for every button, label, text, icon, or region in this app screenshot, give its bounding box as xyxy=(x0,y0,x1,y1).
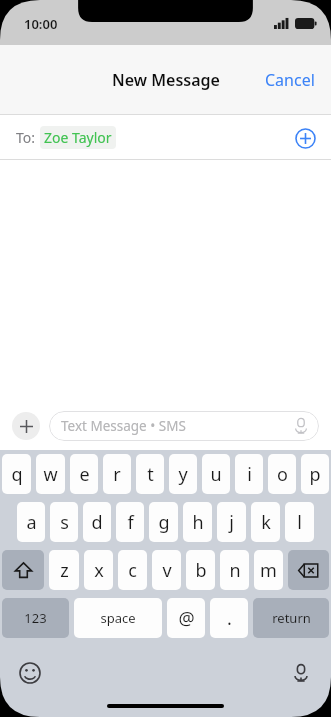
staticText: g xyxy=(158,510,170,535)
staticText: Text Message • SMS xyxy=(61,417,186,435)
other: Dictate xyxy=(292,417,310,435)
staticText: t xyxy=(147,462,154,487)
button[interactable]: n xyxy=(220,550,249,590)
staticText: l xyxy=(297,510,302,535)
staticText: . xyxy=(227,606,232,631)
button[interactable]: q xyxy=(2,454,31,494)
button[interactable]: 123 xyxy=(2,598,69,638)
button[interactable]: t xyxy=(136,454,164,494)
staticText: r xyxy=(113,462,121,487)
staticText: m xyxy=(260,558,277,583)
button[interactable]: r xyxy=(103,454,131,494)
staticText: h xyxy=(192,510,204,535)
button[interactable]: @ xyxy=(167,598,205,638)
button[interactable]: Shift xyxy=(2,550,44,590)
button[interactable]: Backspace xyxy=(288,550,329,590)
staticText: x xyxy=(94,558,104,583)
staticText: Cancel xyxy=(265,69,315,91)
button[interactable]: z xyxy=(49,550,79,590)
staticText: j xyxy=(229,510,234,535)
button[interactable]: m xyxy=(254,550,283,590)
staticText: To: xyxy=(16,128,36,147)
staticText: d xyxy=(91,510,103,535)
staticText: 123 xyxy=(24,609,47,627)
staticText: b xyxy=(195,558,207,583)
button[interactable]: return xyxy=(253,598,329,638)
button[interactable]: u xyxy=(202,454,230,494)
button[interactable]: . xyxy=(210,598,248,638)
staticText: space xyxy=(100,609,136,627)
staticText: u xyxy=(210,462,222,487)
button[interactable]: Emoji xyxy=(14,657,46,689)
staticText: return xyxy=(272,609,311,627)
button[interactable]: p xyxy=(301,454,329,494)
staticText: a xyxy=(26,510,37,535)
staticText: w xyxy=(43,462,58,487)
button[interactable]: h xyxy=(183,502,212,542)
button[interactable]: e xyxy=(70,454,98,494)
button[interactable]: Attach xyxy=(12,412,40,440)
button[interactable]: s xyxy=(50,502,78,542)
button[interactable]: Dictation xyxy=(285,657,317,689)
staticText: z xyxy=(60,558,69,583)
staticText: f xyxy=(127,510,134,535)
button[interactable]: l xyxy=(285,502,314,542)
staticText: o xyxy=(277,462,288,487)
button[interactable]: k xyxy=(251,502,280,542)
button[interactable]: Add contact xyxy=(289,122,321,154)
button[interactable]: space xyxy=(74,598,162,638)
staticText: p xyxy=(309,462,321,487)
staticText: Zoe Taylor xyxy=(44,128,112,147)
staticText: @ xyxy=(178,606,195,631)
staticText: i xyxy=(247,462,252,487)
button[interactable]: c xyxy=(118,550,147,590)
staticText: 10:00 xyxy=(24,15,58,33)
button[interactable]: Cancel xyxy=(249,59,331,101)
staticText: New Message xyxy=(112,69,220,91)
staticText: e xyxy=(79,462,90,487)
button[interactable]: y xyxy=(169,454,197,494)
staticText: q xyxy=(11,462,23,487)
button[interactable]: d xyxy=(83,502,111,542)
button[interactable]: Text Message • SMS xyxy=(49,411,319,441)
button[interactable]: f xyxy=(116,502,144,542)
button[interactable]: o xyxy=(268,454,296,494)
button[interactable]: b xyxy=(186,550,215,590)
staticText: y xyxy=(178,462,188,487)
button[interactable]: a xyxy=(17,502,45,542)
button[interactable]: j xyxy=(217,502,246,542)
staticText: k xyxy=(261,510,271,535)
staticText: v xyxy=(162,558,172,583)
button[interactable]: Zoe Taylor xyxy=(40,126,116,149)
button[interactable]: g xyxy=(149,502,178,542)
staticText: n xyxy=(229,558,241,583)
button[interactable]: x xyxy=(84,550,113,590)
button[interactable]: w xyxy=(36,454,65,494)
staticText: s xyxy=(60,510,69,535)
button[interactable]: v xyxy=(152,550,181,590)
staticText: c xyxy=(128,558,137,583)
button[interactable]: i xyxy=(235,454,263,494)
